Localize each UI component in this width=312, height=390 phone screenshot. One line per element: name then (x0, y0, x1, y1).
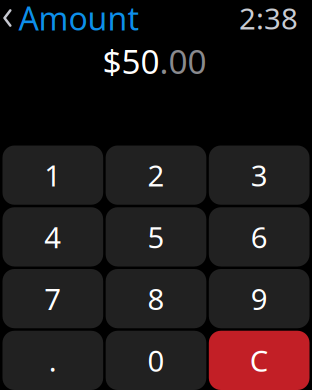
button[interactable]: 3 (209, 145, 309, 205)
staticText: . (49, 341, 57, 380)
button[interactable]: 1 (2, 145, 103, 205)
staticText: 0 (147, 341, 164, 380)
button[interactable]: 7 (2, 269, 103, 328)
staticText: $50 (102, 39, 159, 83)
button[interactable]: C (209, 331, 309, 390)
staticText: 5 (147, 217, 164, 256)
staticText: C (250, 341, 269, 380)
staticText: 8 (147, 279, 164, 318)
staticText: 3 (251, 156, 268, 195)
button[interactable]: 9 (209, 269, 309, 328)
staticText: 4 (44, 217, 61, 256)
staticText: 9 (251, 279, 268, 318)
staticText: 2 (147, 156, 164, 195)
staticText: 7 (44, 279, 61, 318)
staticText: 2:38 (239, 0, 298, 37)
staticText: .00 (159, 39, 206, 83)
staticText: Amount (19, 0, 140, 39)
button[interactable]: 5 (106, 207, 206, 266)
button[interactable]: 2 (106, 145, 206, 205)
button[interactable]: Amount (0, 0, 140, 39)
staticText: 1 (44, 156, 61, 195)
staticText: 6 (251, 217, 268, 256)
button[interactable]: 4 (2, 207, 103, 266)
button[interactable]: 6 (209, 207, 309, 266)
button[interactable]: 0 (106, 331, 206, 390)
button[interactable]: 8 (106, 269, 206, 328)
button[interactable]: . (2, 331, 103, 390)
